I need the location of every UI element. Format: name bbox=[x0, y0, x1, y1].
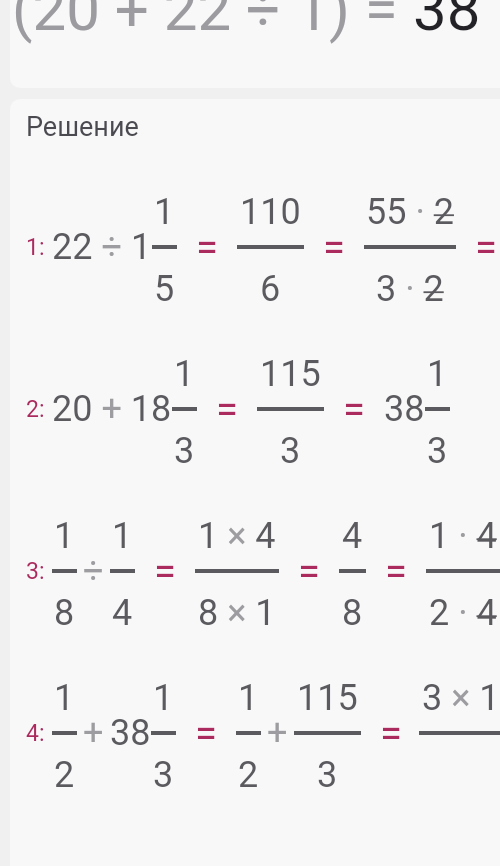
staticText: ÷ bbox=[83, 550, 104, 592]
staticText: 115 bbox=[297, 677, 358, 719]
staticText: 1: bbox=[26, 234, 45, 261]
staticText: 8 bbox=[342, 592, 363, 634]
staticText: 20 + 18 bbox=[52, 388, 172, 430]
staticText: 115 bbox=[260, 353, 321, 395]
staticText: 55 · 2 bbox=[366, 191, 454, 233]
staticText: 1 bbox=[174, 353, 195, 395]
staticText: = bbox=[154, 548, 176, 595]
staticText: 2: bbox=[26, 396, 45, 423]
staticText: 6 bbox=[260, 268, 281, 310]
button[interactable]: 1: bbox=[10, 182, 500, 312]
staticText: 38 bbox=[110, 712, 151, 754]
staticText: 5 bbox=[154, 268, 175, 310]
staticText: 4: bbox=[26, 720, 45, 747]
staticText: 3 × 1 bbox=[422, 677, 500, 719]
staticText: + bbox=[267, 712, 288, 754]
button[interactable]: 2: bbox=[10, 344, 500, 474]
staticText: 2 bbox=[238, 754, 259, 796]
staticText: 3 bbox=[174, 430, 195, 472]
staticText: 2 bbox=[54, 754, 75, 796]
staticText: = bbox=[343, 386, 365, 433]
staticText: 38 bbox=[384, 388, 425, 430]
staticText: = bbox=[196, 224, 218, 271]
staticText: 8 × 1 bbox=[198, 592, 276, 634]
staticText: 22 ÷ 1 bbox=[52, 226, 152, 268]
staticText: Решение bbox=[26, 111, 139, 143]
staticText: 3 bbox=[317, 754, 338, 796]
staticText: = bbox=[385, 548, 407, 595]
staticText: 8 bbox=[54, 592, 75, 634]
staticText: = bbox=[475, 224, 497, 271]
staticText: 2 · 4 bbox=[429, 592, 497, 634]
staticText: = bbox=[380, 710, 402, 757]
button[interactable]: 4: bbox=[10, 668, 500, 798]
staticText: 1 bbox=[112, 515, 133, 557]
staticText: 4 bbox=[342, 515, 363, 557]
staticText: = bbox=[298, 548, 320, 595]
staticText: 38 bbox=[413, 0, 481, 44]
staticText: (20 + 22 ÷ 1 bbox=[12, 0, 329, 44]
staticText: 1 bbox=[54, 515, 75, 557]
staticText: 1 bbox=[153, 677, 174, 719]
button[interactable]: Expression bbox=[10, 0, 500, 88]
staticText: = bbox=[195, 710, 217, 757]
staticText: 3: bbox=[26, 558, 45, 585]
staticText: 1 bbox=[154, 191, 175, 233]
staticText: 1 bbox=[54, 677, 75, 719]
staticText: = bbox=[216, 386, 238, 433]
staticText: 3 bbox=[153, 754, 174, 796]
staticText: + bbox=[83, 712, 104, 754]
staticText: 3 bbox=[427, 430, 448, 472]
staticText: 3 bbox=[280, 430, 301, 472]
staticText: 1 bbox=[238, 677, 259, 719]
staticText: = bbox=[323, 224, 345, 271]
staticText: 4 bbox=[112, 592, 133, 634]
staticText: 110 bbox=[240, 191, 301, 233]
staticText: 1 · 4 bbox=[429, 515, 497, 557]
staticText: ) = bbox=[329, 0, 413, 44]
staticText: 1 bbox=[427, 353, 448, 395]
staticText: 3 · 2 bbox=[376, 268, 444, 310]
button[interactable]: 3: bbox=[10, 506, 500, 636]
staticText: 1 × 4 bbox=[198, 515, 276, 557]
